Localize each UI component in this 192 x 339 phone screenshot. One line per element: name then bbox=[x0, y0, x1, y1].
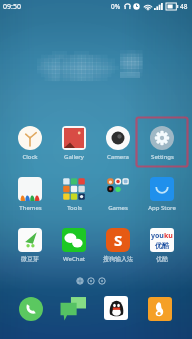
staticText: 微豆芽 bbox=[21, 255, 39, 263]
button[interactable]: S bbox=[96, 219, 140, 263]
staticText: 0% bbox=[111, 2, 121, 11]
staticText: S bbox=[114, 230, 123, 250]
button[interactable]: Themes bbox=[8, 168, 52, 212]
staticText: 搜狗输入法 bbox=[103, 255, 133, 263]
staticText: App Store bbox=[148, 204, 176, 212]
staticText: Gallery bbox=[64, 153, 84, 161]
button[interactable]: Clock bbox=[8, 117, 52, 161]
button[interactable]: Camera bbox=[96, 117, 140, 161]
button[interactable]: Messages bbox=[60, 296, 86, 322]
staticText: Themes bbox=[19, 204, 42, 212]
button[interactable]: Games bbox=[96, 168, 140, 212]
button[interactable]: you bbox=[140, 219, 184, 263]
button[interactable]: Tools bbox=[52, 168, 96, 212]
button[interactable]: Browser bbox=[148, 297, 174, 323]
button[interactable]: 微豆芽 bbox=[8, 219, 52, 263]
button[interactable]: QQ bbox=[104, 296, 130, 322]
button[interactable]: Gallery bbox=[52, 117, 96, 161]
staticText: 09:50 bbox=[3, 2, 21, 12]
staticText: Settings bbox=[151, 153, 174, 161]
button[interactable]: Settings bbox=[140, 117, 184, 161]
staticText: Clock bbox=[22, 153, 38, 161]
staticText: ku bbox=[164, 231, 173, 241]
staticText: you bbox=[151, 231, 164, 241]
staticText: 48 bbox=[180, 2, 188, 11]
staticText: Games bbox=[108, 204, 128, 212]
button[interactable]: Phone bbox=[19, 297, 45, 323]
button[interactable]: App Store bbox=[140, 168, 184, 212]
staticText: 优酷 bbox=[155, 241, 169, 250]
staticText: WeChat bbox=[63, 255, 85, 263]
staticText: Camera bbox=[107, 153, 129, 161]
staticText: Tools bbox=[67, 204, 82, 212]
button[interactable]: WeChat bbox=[52, 219, 96, 263]
staticText: 优酷 bbox=[156, 255, 168, 263]
